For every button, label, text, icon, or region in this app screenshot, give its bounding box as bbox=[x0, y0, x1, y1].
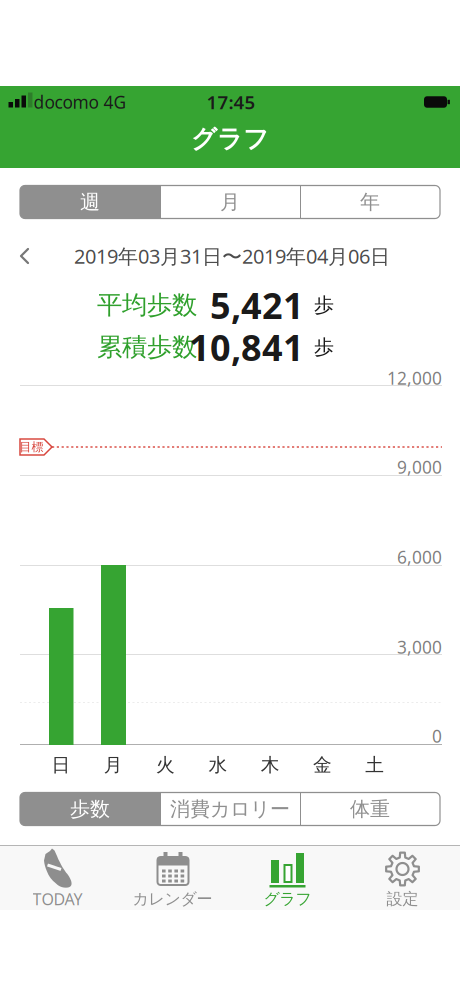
button[interactable]: 体重 bbox=[300, 792, 440, 825]
staticText: 6,000 bbox=[397, 545, 442, 568]
staticText: 体重 bbox=[350, 797, 390, 821]
button[interactable]: グラフ bbox=[232, 846, 342, 910]
staticText: 土 bbox=[365, 753, 384, 776]
staticText: 消費カロリー bbox=[170, 797, 290, 821]
staticText: TODAY bbox=[32, 888, 82, 910]
button[interactable]: 月 bbox=[160, 185, 300, 218]
staticText: グラフ bbox=[263, 889, 311, 909]
staticText: 日 bbox=[51, 753, 70, 776]
staticText: 5,421 bbox=[210, 281, 304, 329]
staticText: 2019年03月31日〜2019年04月06日 bbox=[74, 243, 390, 269]
staticText: 9,000 bbox=[397, 455, 442, 478]
staticText: 累積歩数 bbox=[97, 331, 197, 362]
button[interactable] bbox=[12, 241, 42, 271]
staticText: 年 bbox=[360, 190, 380, 214]
staticText: 水 bbox=[208, 753, 227, 776]
button[interactable]: TODAY bbox=[2, 846, 112, 910]
staticText: 4G bbox=[103, 90, 126, 113]
staticText: 歩 bbox=[314, 293, 334, 317]
staticText: 木 bbox=[261, 753, 280, 776]
staticText: 設定 bbox=[386, 889, 418, 909]
staticText: カレンダー bbox=[132, 889, 212, 909]
button[interactable]: 週 bbox=[20, 185, 160, 218]
staticText: グラフ bbox=[191, 123, 269, 154]
staticText: 0 bbox=[432, 724, 442, 747]
staticText: 歩 bbox=[314, 335, 334, 359]
staticText: 金 bbox=[313, 753, 332, 776]
staticText: 3,000 bbox=[397, 635, 442, 658]
button[interactable]: 年 bbox=[300, 185, 440, 218]
button[interactable]: 設定 bbox=[347, 846, 457, 910]
staticText: 週 bbox=[80, 190, 100, 214]
staticText: 月 bbox=[104, 753, 123, 776]
staticText: 目標 bbox=[19, 440, 43, 454]
staticText: 12,000 bbox=[387, 366, 442, 389]
staticText: 平均歩数 bbox=[97, 289, 197, 320]
staticText: 月 bbox=[220, 190, 240, 214]
button[interactable]: カレンダー bbox=[117, 846, 227, 910]
staticText: 17:45 bbox=[206, 90, 255, 114]
staticText: 火 bbox=[156, 753, 175, 776]
button[interactable]: 歩数 bbox=[20, 792, 160, 825]
button[interactable]: 消費カロリー bbox=[160, 792, 300, 825]
staticText: 歩数 bbox=[70, 797, 110, 821]
staticText: 10,841 bbox=[189, 323, 304, 371]
staticText: docomo bbox=[33, 90, 98, 113]
